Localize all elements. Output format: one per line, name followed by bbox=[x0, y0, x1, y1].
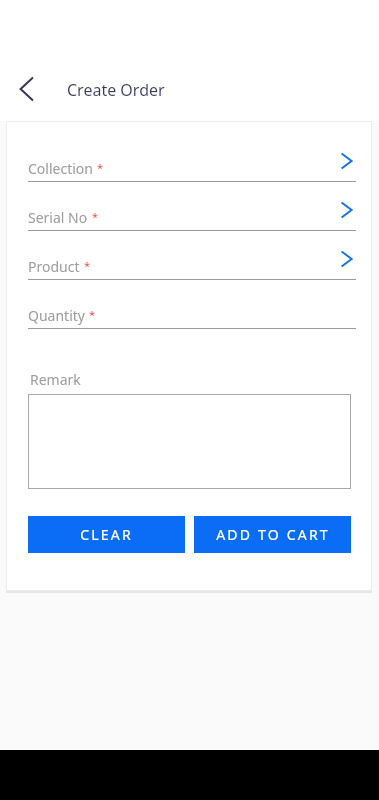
button[interactable]: ADD TO CART bbox=[194, 516, 351, 553]
staticText: Collection bbox=[28, 159, 93, 178]
staticText: CLEAR bbox=[80, 525, 133, 544]
staticText: Remark bbox=[30, 370, 81, 389]
button[interactable]: Collection bbox=[28, 147, 356, 182]
button[interactable]: Back bbox=[8, 70, 46, 108]
staticText: Quantity bbox=[28, 306, 85, 325]
staticText: * bbox=[84, 258, 91, 273]
staticText: Product bbox=[28, 257, 80, 276]
other: Select Product bbox=[336, 248, 356, 270]
button[interactable]: Serial No bbox=[28, 196, 356, 231]
staticText: * bbox=[92, 209, 99, 224]
staticText: ADD TO CART bbox=[216, 525, 330, 544]
staticText: Serial No bbox=[28, 208, 88, 227]
button[interactable] bbox=[28, 394, 351, 489]
button[interactable]: CLEAR bbox=[28, 516, 185, 553]
other: Select Collection bbox=[336, 150, 356, 172]
staticText: * bbox=[97, 160, 104, 175]
button[interactable]: Quantity bbox=[28, 294, 356, 329]
staticText: * bbox=[89, 307, 96, 322]
staticText: Create Order bbox=[67, 79, 165, 101]
button[interactable]: Product bbox=[28, 245, 356, 280]
other: Select Serial No bbox=[336, 199, 356, 221]
